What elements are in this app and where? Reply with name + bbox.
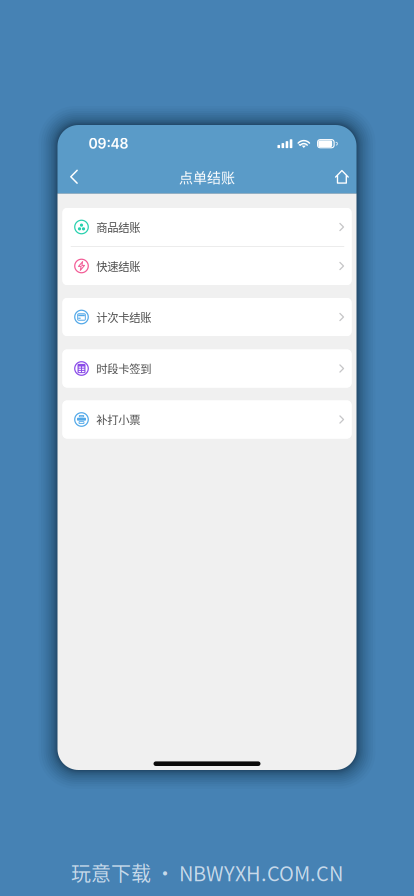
staticText: 09:48 xyxy=(88,135,128,152)
staticText: 玩意下载 • NBWYXH.COM.CN xyxy=(71,858,343,887)
staticText: 商品结账 xyxy=(96,219,140,235)
button[interactable]: 商品结账 xyxy=(62,208,351,246)
button[interactable]: 快速结账 xyxy=(62,247,351,285)
staticText: 补打小票 xyxy=(96,411,140,428)
staticText: 快速结账 xyxy=(96,258,140,274)
button[interactable]: Home xyxy=(323,160,356,193)
button[interactable]: 计次卡结账 xyxy=(62,298,351,336)
staticText: 计次卡结账 xyxy=(96,309,151,325)
button[interactable]: 时段卡签到 xyxy=(62,349,351,387)
button[interactable]: 补打小票 xyxy=(62,400,351,438)
staticText: 时段卡签到 xyxy=(96,360,151,377)
button[interactable]: Back xyxy=(57,160,89,193)
staticText: 点单结账 xyxy=(179,167,235,187)
